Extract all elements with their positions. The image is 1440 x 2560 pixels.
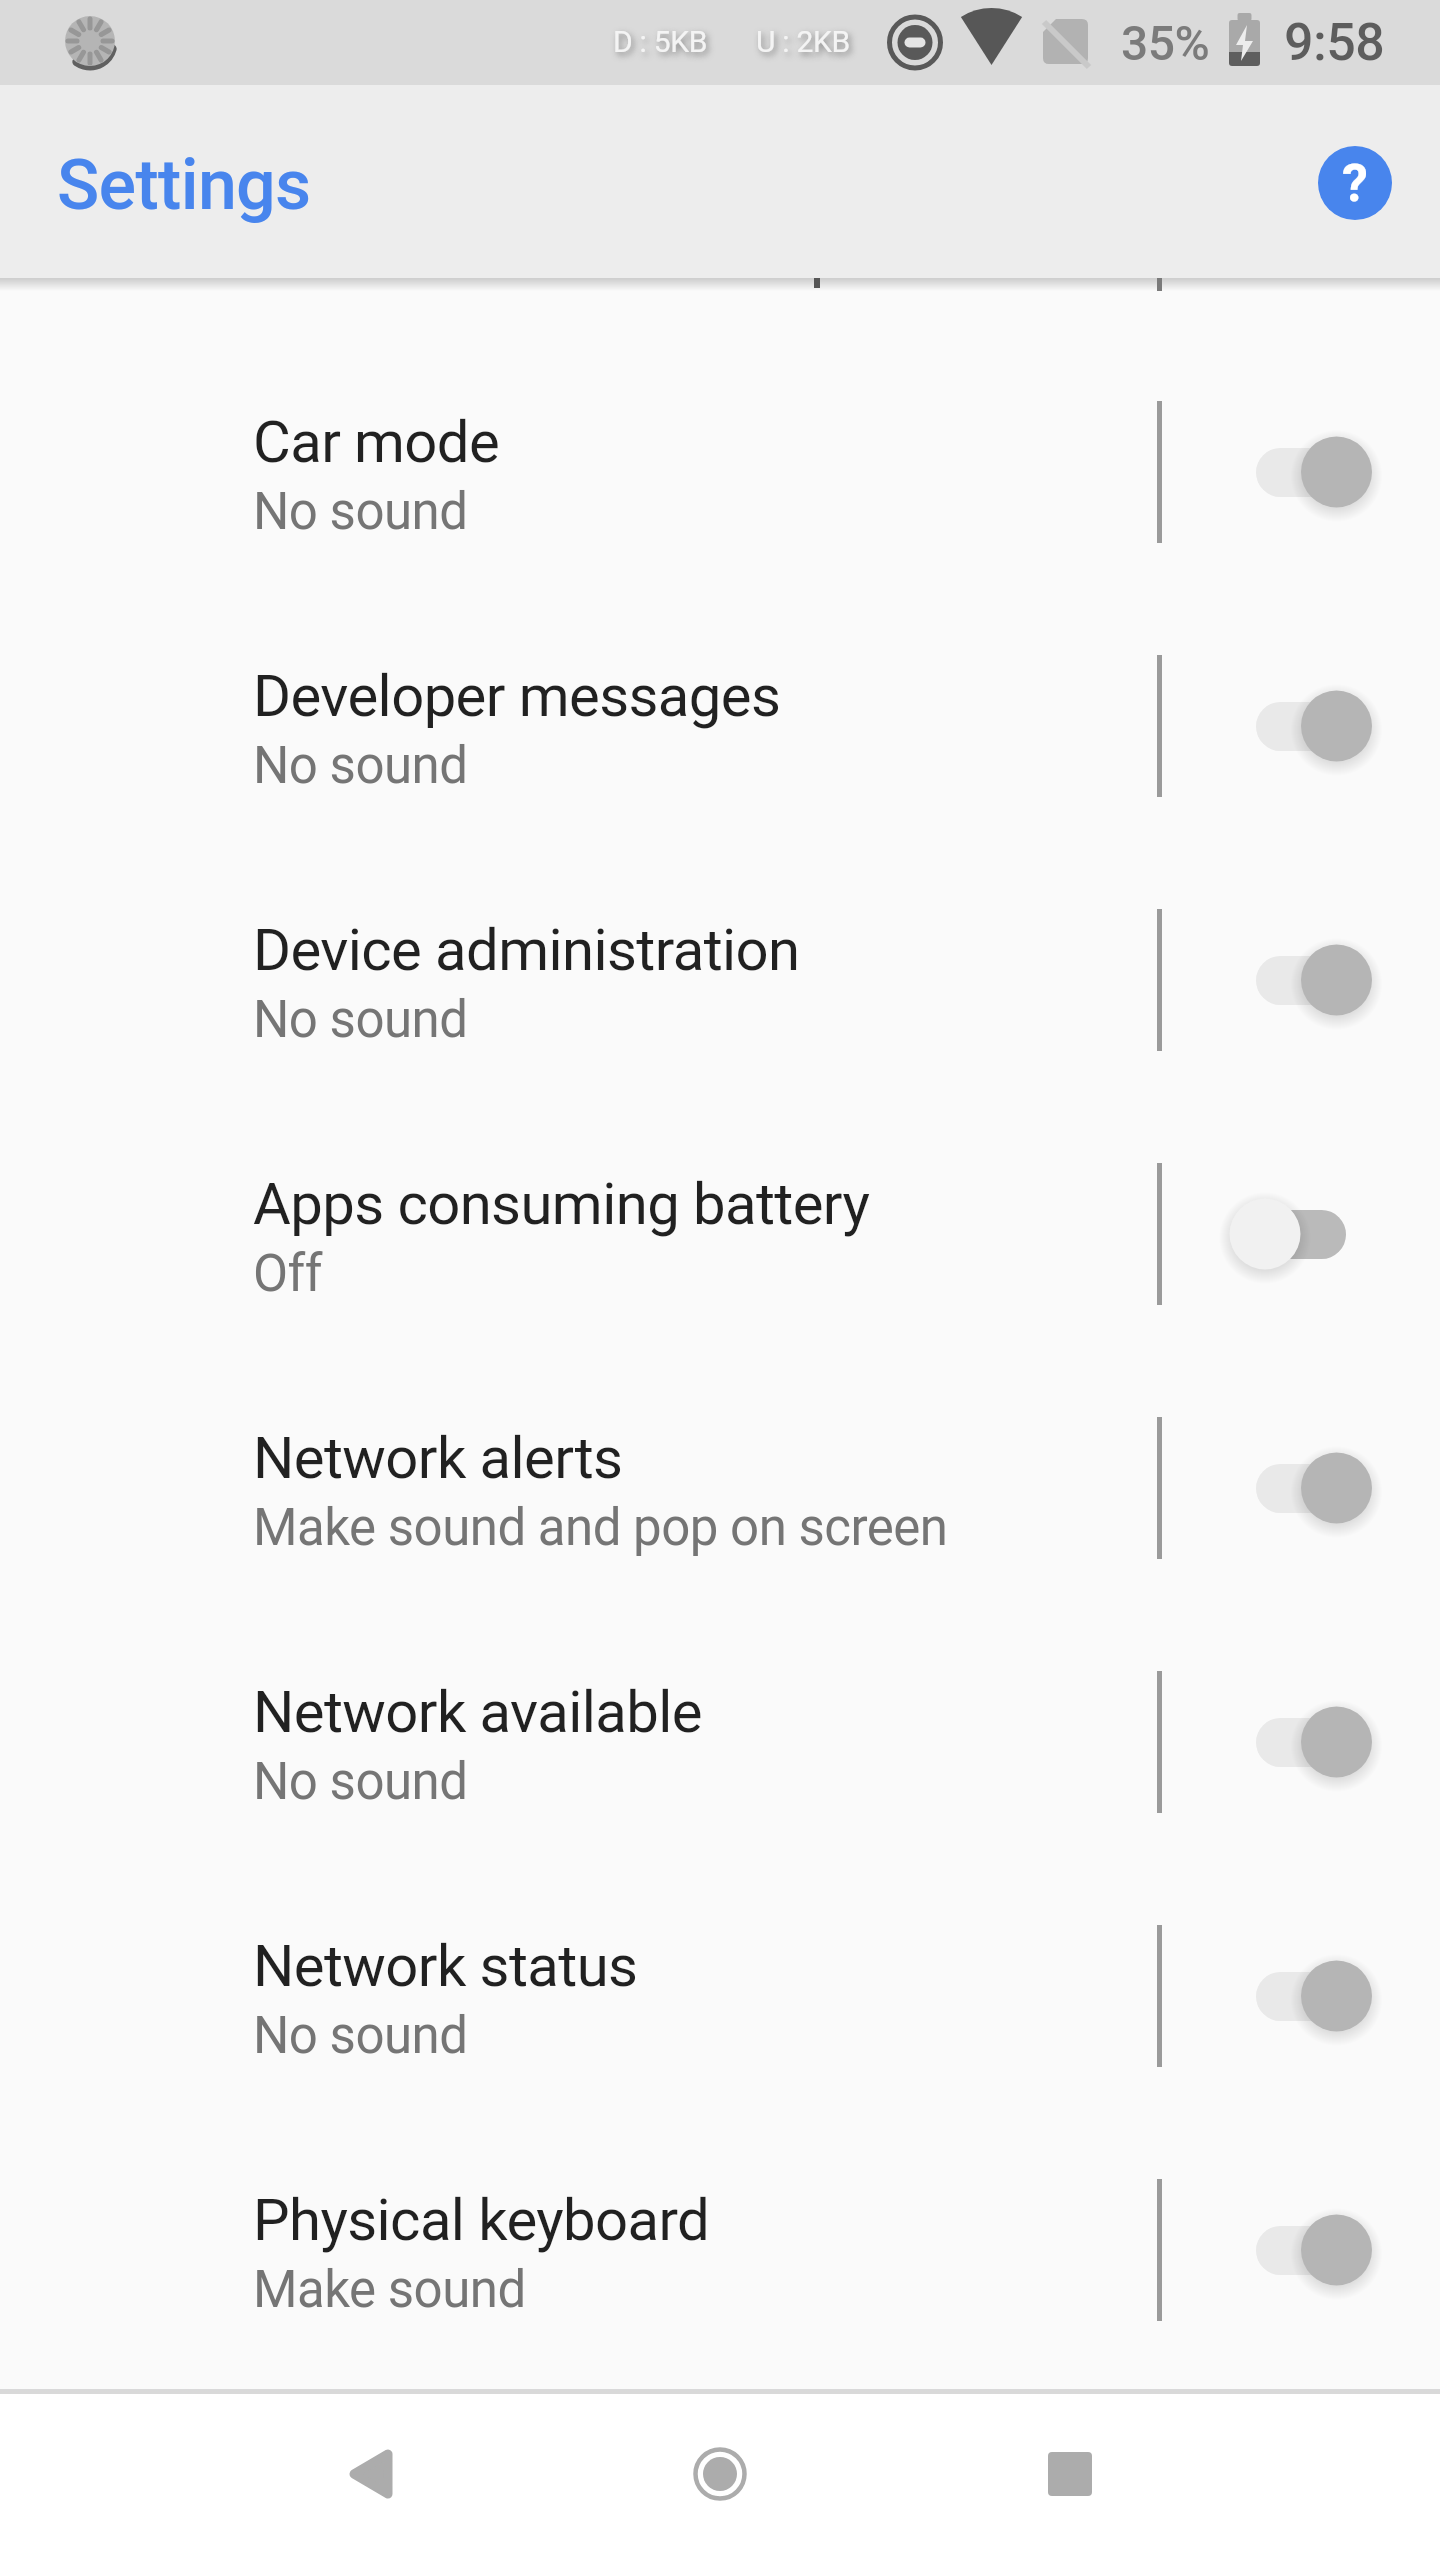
staticText: Make sound (253, 2260, 526, 2320)
staticText: Device administration (253, 916, 800, 984)
staticText: No sound (253, 1752, 468, 1812)
button[interactable] (1229, 424, 1372, 520)
staticText: No sound (253, 990, 468, 1050)
staticText: Network status (253, 1932, 638, 2000)
staticText: D : 5KB (613, 24, 708, 59)
button[interactable] (680, 2433, 760, 2513)
staticText: ? (1342, 153, 1368, 214)
button[interactable]: Device administration (0, 853, 1440, 1107)
staticText: Network available (253, 1678, 702, 1746)
button[interactable]: Car mode (0, 345, 1440, 599)
staticText: Car mode (253, 408, 500, 476)
button[interactable]: Developer messages (0, 599, 1440, 853)
button[interactable]: Network available (0, 1615, 1440, 1869)
staticText: No sound (253, 736, 468, 796)
button[interactable]: Apps consuming battery (0, 1107, 1440, 1361)
staticText: Make sound and pop on screen (253, 1498, 948, 1558)
button[interactable]: ? (1318, 146, 1392, 220)
button[interactable] (1229, 2202, 1372, 2298)
button[interactable]: Network status (0, 1869, 1440, 2123)
button[interactable] (1229, 932, 1372, 1028)
staticText: No sound (253, 2006, 468, 2066)
button[interactable] (1229, 1440, 1372, 1536)
staticText: Network alerts (253, 1424, 623, 1492)
button[interactable] (1229, 678, 1372, 774)
button[interactable] (1229, 1186, 1372, 1282)
staticText: No sound (253, 482, 468, 542)
button[interactable] (1229, 1948, 1372, 2044)
staticText: Physical keyboard (253, 2186, 710, 2254)
button[interactable] (1229, 1694, 1372, 1790)
staticText: Settings (57, 144, 311, 226)
button[interactable] (331, 2433, 411, 2513)
staticText: 9:58 (1284, 12, 1385, 73)
button[interactable]: Physical keyboard (0, 2123, 1440, 2377)
staticText: Off (253, 1244, 323, 1304)
staticText: Developer messages (253, 662, 781, 730)
staticText: Apps consuming battery (253, 1170, 870, 1238)
button[interactable]: Network alerts (0, 1361, 1440, 1615)
button[interactable] (1030, 2433, 1110, 2513)
staticText: U : 2KB (756, 24, 850, 59)
staticText: 35% (1121, 15, 1210, 71)
